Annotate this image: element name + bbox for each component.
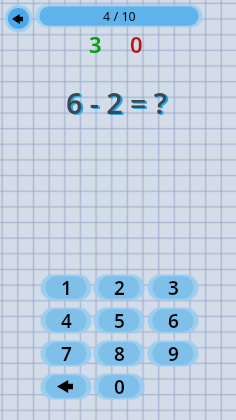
staticText: 8: [114, 341, 125, 367]
button[interactable]: Backspace: [40, 373, 92, 400]
staticText: 6 - 2 = ?: [68, 85, 169, 124]
button[interactable]: 4 / 10: [35, 4, 203, 28]
staticText: 0: [114, 374, 125, 400]
staticText: 1: [61, 275, 72, 301]
staticText: 5: [114, 308, 125, 334]
button[interactable]: 8: [93, 340, 145, 367]
button[interactable]: 3: [147, 274, 199, 301]
button[interactable]: 2: [93, 274, 145, 301]
button[interactable]: 5: [93, 307, 145, 334]
staticText: 3: [89, 29, 102, 59]
staticText: 4: [61, 308, 72, 334]
staticText: 3: [168, 275, 179, 301]
button[interactable]: 4: [40, 307, 92, 334]
staticText: 9: [168, 341, 179, 367]
button[interactable]: Back: [4, 4, 33, 33]
button[interactable]: 6: [147, 307, 199, 334]
staticText: 4 / 10: [103, 8, 136, 25]
button[interactable]: 0: [93, 373, 145, 400]
staticText: 0: [130, 29, 143, 59]
button[interactable]: 9: [147, 340, 199, 367]
staticText: 7: [61, 341, 72, 367]
staticText: 6: [168, 308, 179, 334]
staticText: 2: [114, 275, 125, 301]
staticText: 6 - 2 = ?: [66, 84, 167, 123]
button[interactable]: 1: [40, 274, 92, 301]
button[interactable]: 7: [40, 340, 92, 367]
